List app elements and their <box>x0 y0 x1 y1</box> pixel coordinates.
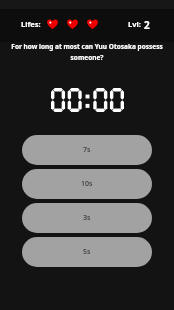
button[interactable]: 5s <box>22 237 152 267</box>
staticText: Lvl: <box>128 19 141 29</box>
button[interactable]: 7s <box>22 135 152 165</box>
button[interactable]: 10s <box>22 169 152 199</box>
button[interactable]: 3s <box>22 203 152 233</box>
staticText: 3s <box>83 213 91 223</box>
staticText: 2 <box>144 18 150 30</box>
staticText: For how long at most can Yuu Otosaka pos… <box>4 42 170 62</box>
staticText: 7s <box>83 145 91 155</box>
staticText: Lifes: <box>21 19 41 29</box>
staticText: 5s <box>83 247 91 257</box>
staticText: 10s <box>81 179 93 189</box>
